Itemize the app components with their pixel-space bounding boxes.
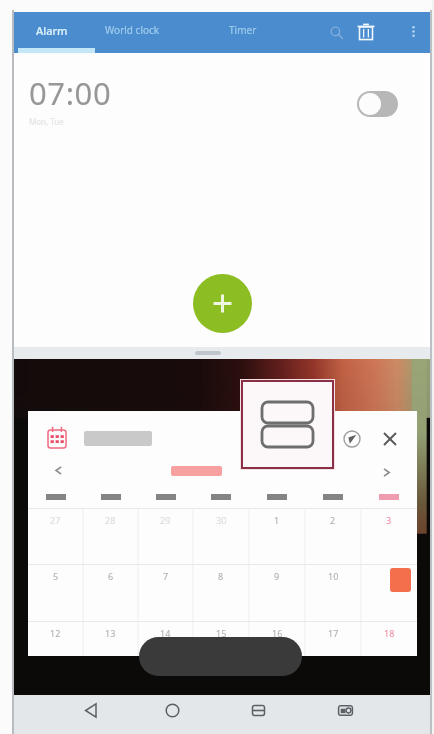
- button[interactable]: 7: [138, 564, 193, 621]
- staticText: 5: [53, 570, 59, 582]
- button[interactable]: [193, 483, 249, 508]
- button[interactable]: [28, 483, 83, 508]
- staticText: 3: [386, 514, 392, 526]
- button[interactable]: Add alarm: [193, 274, 252, 333]
- button[interactable]: 13: [83, 621, 138, 656]
- staticText: 17: [328, 627, 339, 639]
- button[interactable]: 27: [28, 508, 83, 564]
- button[interactable]: World clock: [94, 16, 170, 44]
- staticText: 6: [108, 570, 114, 582]
- button[interactable]: Share: [340, 427, 364, 451]
- staticText: 1: [274, 514, 280, 526]
- staticText: Alarm: [36, 23, 68, 38]
- button[interactable]: 3: [361, 508, 417, 564]
- button[interactable]: 15: [193, 621, 249, 656]
- button[interactable]: Alarm: [18, 16, 85, 44]
- button[interactable]: Back: [78, 697, 104, 723]
- button[interactable]: Close: [378, 427, 402, 451]
- button[interactable]: 6: [83, 564, 138, 621]
- button[interactable]: Home: [159, 697, 185, 723]
- staticText: 07:00: [29, 72, 112, 114]
- button[interactable]: 17: [305, 621, 361, 656]
- button[interactable]: Split screen: [243, 382, 332, 467]
- button[interactable]: [83, 483, 138, 508]
- button[interactable]: 18: [361, 621, 417, 656]
- button[interactable]: [361, 564, 417, 621]
- button[interactable]: 2: [305, 508, 361, 564]
- button[interactable]: 12: [28, 621, 83, 656]
- button[interactable]: [138, 483, 193, 508]
- staticText: 14: [160, 627, 171, 639]
- staticText: 18: [384, 627, 395, 639]
- button[interactable]: [249, 483, 305, 508]
- staticText: Mon, Tue: [29, 116, 64, 127]
- staticText: 29: [160, 514, 171, 526]
- staticText: 15: [216, 627, 227, 639]
- button[interactable]: 29: [138, 508, 193, 564]
- staticText: 7: [163, 570, 169, 582]
- button[interactable]: 5: [28, 564, 83, 621]
- button[interactable]: More options: [400, 18, 426, 44]
- button[interactable]: Calendar app: [47, 426, 67, 449]
- button[interactable]: Timer: [210, 16, 276, 44]
- staticText: Timer: [229, 23, 257, 37]
- button[interactable]: App drawer: [139, 637, 302, 676]
- staticText: 16: [272, 627, 283, 639]
- button[interactable]: Next month: [375, 461, 397, 483]
- staticText: 27: [50, 514, 61, 526]
- staticText: 8: [218, 570, 224, 582]
- staticText: 13: [105, 627, 116, 639]
- button[interactable]: 9: [249, 564, 305, 621]
- button[interactable]: 14: [138, 621, 193, 656]
- button[interactable]: Previous month: [47, 459, 69, 481]
- button[interactable]: Search: [322, 18, 350, 46]
- button[interactable]: 10: [305, 564, 361, 621]
- staticText: 28: [105, 514, 116, 526]
- button[interactable]: 30: [193, 508, 249, 564]
- staticText: 10: [328, 570, 339, 582]
- button[interactable]: Delete: [351, 17, 381, 47]
- staticText: 2: [330, 514, 336, 526]
- button[interactable]: 28: [83, 508, 138, 564]
- button[interactable]: 8: [193, 564, 249, 621]
- staticText: 12: [50, 627, 61, 639]
- button[interactable]: Dual window: [332, 697, 358, 723]
- button[interactable]: 07:00: [14, 53, 430, 139]
- staticText: 9: [274, 570, 280, 582]
- button[interactable]: 1: [249, 508, 305, 564]
- button[interactable]: 16: [249, 621, 305, 656]
- button[interactable]: [305, 483, 361, 508]
- button[interactable]: [361, 483, 417, 508]
- staticText: World clock: [105, 23, 160, 37]
- button[interactable]: Alarm on off: [357, 91, 398, 117]
- staticText: 30: [216, 514, 227, 526]
- button[interactable]: Recents: [245, 697, 271, 723]
